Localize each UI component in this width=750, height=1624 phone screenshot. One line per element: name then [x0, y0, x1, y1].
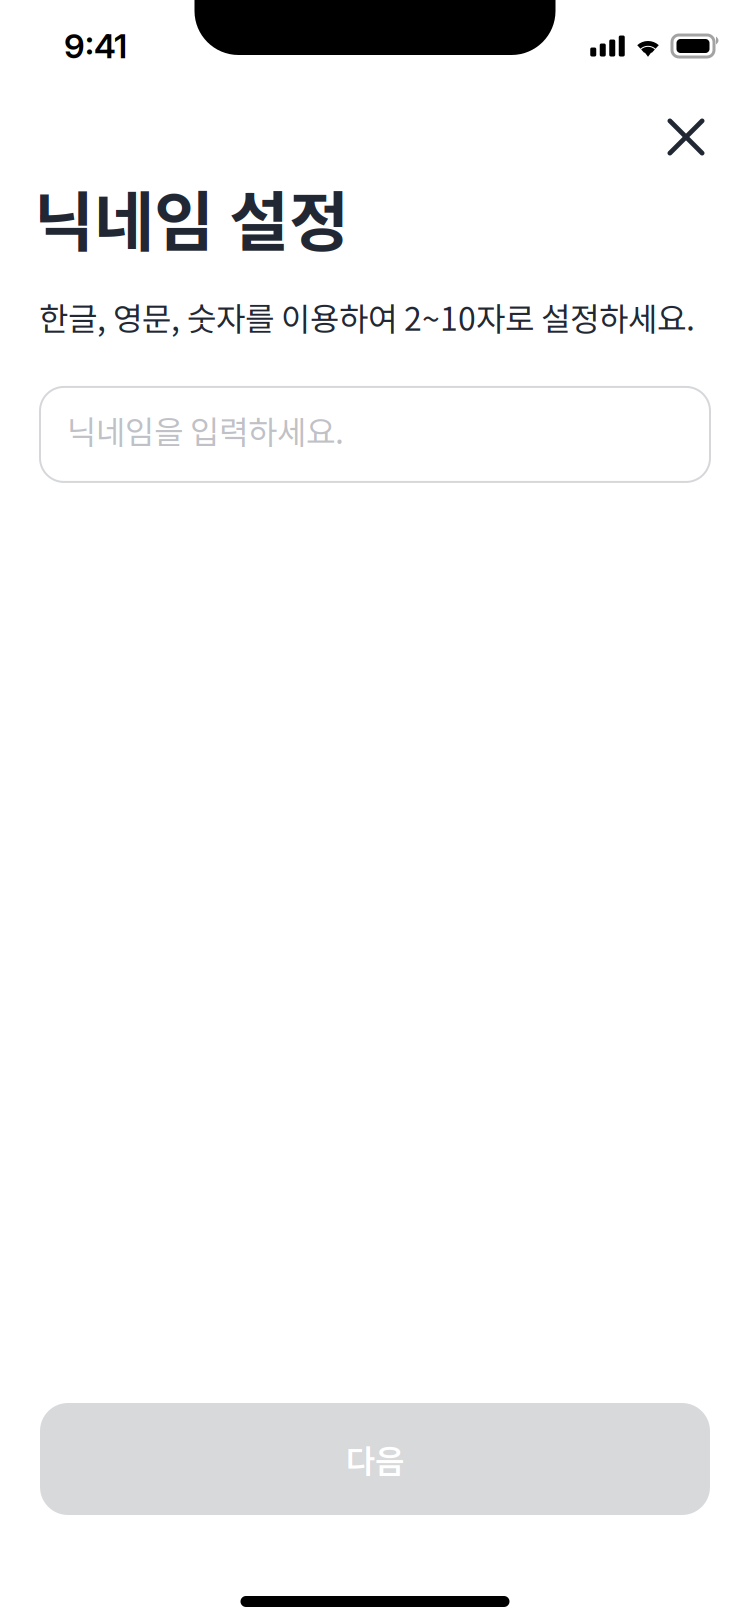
button[interactable]: 닫기 — [642, 90, 730, 170]
staticText: 닉네임을 입력하세요. — [67, 407, 344, 453]
staticText: 다음 — [346, 1436, 404, 1482]
staticText: 한글, 영문, 숫자를 이용하여 2~10자로 설정하세요. — [39, 294, 695, 340]
button[interactable]: 닉네임을 입력하세요. — [40, 387, 710, 482]
staticText: 9:41 — [64, 26, 127, 66]
button[interactable]: 다음 — [40, 1403, 710, 1515]
staticText: 닉네임 설정 — [34, 170, 349, 265]
